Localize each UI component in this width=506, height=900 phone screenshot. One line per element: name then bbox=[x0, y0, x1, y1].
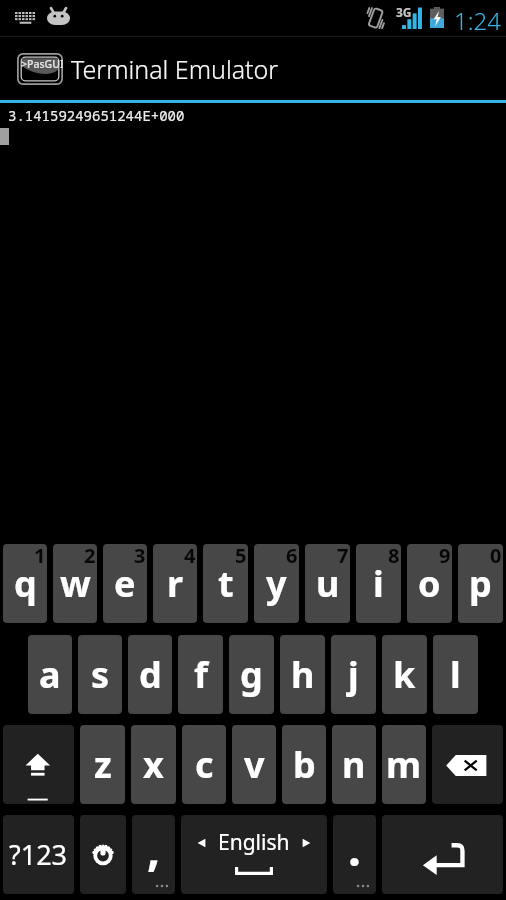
staticText: g bbox=[240, 650, 263, 699]
staticText: t bbox=[218, 559, 234, 608]
staticText: f bbox=[194, 650, 208, 699]
button[interactable]: Voice input bbox=[80, 815, 126, 894]
button[interactable]: k bbox=[382, 635, 427, 714]
staticText: p bbox=[469, 559, 492, 608]
button[interactable]: n bbox=[332, 725, 376, 804]
staticText: 3.14159249651244E+000 bbox=[8, 106, 185, 125]
button[interactable]: h bbox=[280, 635, 325, 714]
staticText: m bbox=[386, 740, 422, 789]
staticText: q bbox=[14, 559, 37, 608]
staticText: l bbox=[450, 650, 461, 699]
staticText: w bbox=[60, 559, 91, 608]
staticText: 2 bbox=[84, 544, 96, 569]
other: System notification bbox=[47, 8, 70, 25]
button[interactable]: Backspace bbox=[432, 725, 503, 804]
staticText: 1 bbox=[34, 544, 46, 569]
staticText: i bbox=[373, 559, 384, 608]
button[interactable]: 9 bbox=[407, 544, 452, 623]
staticText: a bbox=[39, 650, 61, 699]
button[interactable]: Terminal output bbox=[0, 103, 506, 537]
staticText: 6 bbox=[286, 544, 298, 569]
staticText: ?123 bbox=[9, 836, 68, 873]
button[interactable]: s bbox=[78, 635, 122, 714]
button[interactable]: 0 bbox=[458, 544, 503, 623]
button[interactable]: f bbox=[178, 635, 223, 714]
staticText: y bbox=[266, 559, 287, 608]
staticText: 9 bbox=[439, 544, 451, 569]
staticText: e bbox=[114, 559, 136, 608]
button[interactable]: b bbox=[282, 725, 326, 804]
other: Vibrate mode bbox=[365, 6, 386, 30]
staticText: 3G bbox=[396, 4, 412, 20]
staticText: English bbox=[218, 828, 290, 857]
button[interactable]: English bbox=[181, 815, 327, 894]
staticText: Terminal Emulator bbox=[71, 52, 279, 86]
button[interactable]: Enter bbox=[382, 815, 503, 894]
staticText: 4 bbox=[184, 544, 196, 569]
staticText: , bbox=[147, 817, 161, 880]
staticText: j bbox=[348, 650, 359, 699]
button[interactable]: >PasGUI bbox=[0, 37, 506, 100]
button[interactable]: 8 bbox=[356, 544, 401, 623]
button[interactable]: 5 bbox=[203, 544, 248, 623]
button[interactable]: 7 bbox=[305, 544, 350, 623]
staticText: h bbox=[291, 650, 315, 699]
button[interactable]: g bbox=[229, 635, 274, 714]
button[interactable]: z bbox=[80, 725, 125, 804]
staticText: 0 bbox=[490, 544, 502, 569]
staticText: 5 bbox=[235, 544, 247, 569]
staticText: o bbox=[418, 559, 441, 608]
staticText: x bbox=[143, 740, 164, 789]
staticText: 3 bbox=[134, 544, 146, 569]
staticText: n bbox=[342, 740, 366, 789]
staticText: v bbox=[244, 740, 265, 789]
staticText: k bbox=[393, 650, 416, 699]
button[interactable]: x bbox=[131, 725, 176, 804]
staticText: r bbox=[167, 559, 184, 608]
button[interactable]: 4 bbox=[153, 544, 197, 623]
button[interactable]: 6 bbox=[254, 544, 299, 623]
other: Mobile signal bbox=[402, 6, 422, 29]
staticText: 1:24 bbox=[454, 4, 501, 37]
staticText: 8 bbox=[388, 544, 400, 569]
staticText: b bbox=[293, 740, 316, 789]
staticText: s bbox=[91, 650, 110, 699]
staticText: . bbox=[348, 817, 361, 880]
button[interactable]: 1 bbox=[3, 544, 47, 623]
button[interactable]: , bbox=[132, 815, 175, 894]
staticText: z bbox=[94, 740, 112, 789]
button[interactable]: j bbox=[331, 635, 376, 714]
button[interactable]: l bbox=[433, 635, 478, 714]
button[interactable]: ?123 bbox=[3, 815, 74, 894]
other: Battery charging bbox=[430, 7, 444, 28]
button[interactable]: Shift bbox=[3, 725, 74, 804]
button[interactable]: 2 bbox=[53, 544, 97, 623]
button[interactable]: c bbox=[182, 725, 226, 804]
staticText: d bbox=[139, 650, 162, 699]
staticText: >PasGUI bbox=[21, 57, 63, 71]
staticText: c bbox=[195, 740, 214, 789]
button[interactable]: a bbox=[28, 635, 72, 714]
staticText: u bbox=[316, 559, 340, 608]
other: Select keyboard bbox=[15, 12, 36, 24]
button[interactable]: m bbox=[382, 725, 426, 804]
button[interactable]: 3 bbox=[103, 544, 147, 623]
button[interactable]: v bbox=[232, 725, 276, 804]
button[interactable]: . bbox=[333, 815, 376, 894]
button[interactable]: d bbox=[128, 635, 172, 714]
staticText: 7 bbox=[337, 544, 349, 569]
